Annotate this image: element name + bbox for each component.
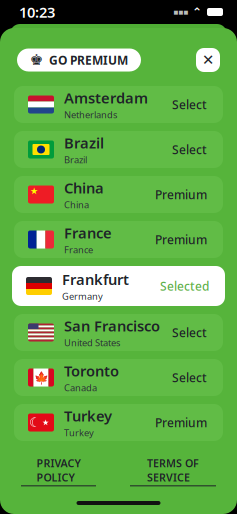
staticText: Germany: [62, 290, 103, 302]
staticText: Canada: [64, 381, 97, 394]
staticText: ☾: [29, 415, 41, 430]
staticText: ★: [30, 186, 38, 196]
staticText: Frankfurt: [62, 270, 129, 289]
button[interactable]: Amsterdam: [0, 86, 237, 123]
staticText: Premium: [155, 186, 207, 202]
staticText: Turkey: [64, 406, 112, 426]
staticText: United States: [64, 336, 120, 349]
button[interactable]: ☾: [0, 404, 237, 441]
staticText: France: [64, 223, 112, 243]
staticText: 10:23: [19, 2, 55, 22]
staticText: San Francisco: [64, 316, 160, 336]
staticText: Premium: [155, 231, 207, 247]
staticText: ▪▪▪: [173, 7, 188, 17]
staticText: China: [64, 178, 104, 198]
staticText: Turkey: [64, 426, 94, 439]
staticText: Toronto: [64, 361, 119, 381]
staticText: France: [64, 243, 93, 256]
staticText: Netherlands: [64, 108, 117, 121]
staticText: ✕: [202, 52, 214, 68]
staticText: GO PREMIUM: [49, 52, 128, 68]
button[interactable]: TERMS OF SERVICE: [130, 456, 216, 486]
button[interactable]: PRIVACY POLICY: [21, 456, 96, 486]
button[interactable]: ♚: [17, 48, 141, 71]
button[interactable]: Close: [196, 48, 220, 72]
staticText: Select: [172, 96, 207, 112]
staticText: ★: [42, 418, 49, 427]
staticText: Select: [172, 324, 207, 340]
staticText: Select: [172, 369, 207, 385]
staticText: PRIVACY POLICY: [36, 456, 80, 484]
staticText: 🍁: [33, 371, 48, 384]
staticText: Premium: [155, 414, 207, 430]
staticText: Brazil: [64, 133, 104, 153]
staticText: China: [64, 198, 89, 211]
button[interactable]: ★: [0, 176, 237, 213]
button[interactable]: 🍁: [0, 359, 237, 396]
staticText: ⌃: [192, 5, 202, 19]
button[interactable]: France: [0, 221, 237, 258]
button[interactable]: Brazil: [0, 131, 237, 168]
button[interactable]: San Francisco: [0, 314, 237, 351]
button[interactable]: Frankfurt: [0, 266, 237, 306]
staticText: TERMS OF SERVICE: [147, 456, 199, 484]
staticText: ♚: [30, 52, 43, 68]
staticText: Amsterdam: [64, 88, 148, 108]
staticText: Selected: [160, 278, 209, 294]
staticText: Brazil: [64, 153, 87, 166]
staticText: Select: [172, 141, 207, 157]
